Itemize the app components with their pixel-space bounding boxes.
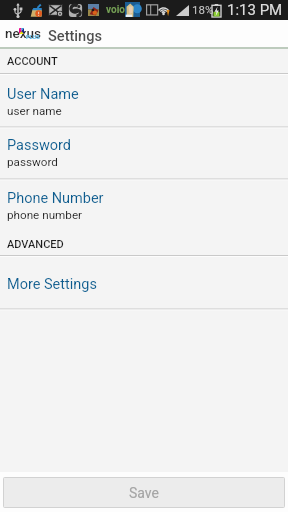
button[interactable]: Save xyxy=(3,477,285,508)
staticText: password xyxy=(7,155,58,169)
staticText: Settings xyxy=(48,27,102,44)
staticText: 18% xyxy=(192,3,214,16)
button[interactable]: More Settings xyxy=(0,269,288,313)
staticText: ADVANCED xyxy=(7,238,64,251)
staticText: Password xyxy=(7,137,72,154)
staticText: 1:13 PM xyxy=(227,1,283,19)
staticText: More Settings xyxy=(7,276,97,293)
staticText: user name xyxy=(7,104,62,118)
staticText: Phone Number xyxy=(7,190,104,207)
button[interactable]: Phone Number xyxy=(0,183,288,228)
staticText: Save xyxy=(129,485,159,501)
button[interactable]: User Name xyxy=(0,79,288,124)
staticText: phone number xyxy=(7,208,83,222)
staticText: voio xyxy=(106,4,125,16)
staticText: User Name xyxy=(7,86,79,103)
staticText: PLUS xyxy=(26,34,40,41)
staticText: nexus xyxy=(5,25,41,41)
button[interactable]: Password xyxy=(0,130,288,175)
staticText: ACCOUNT xyxy=(7,55,58,68)
